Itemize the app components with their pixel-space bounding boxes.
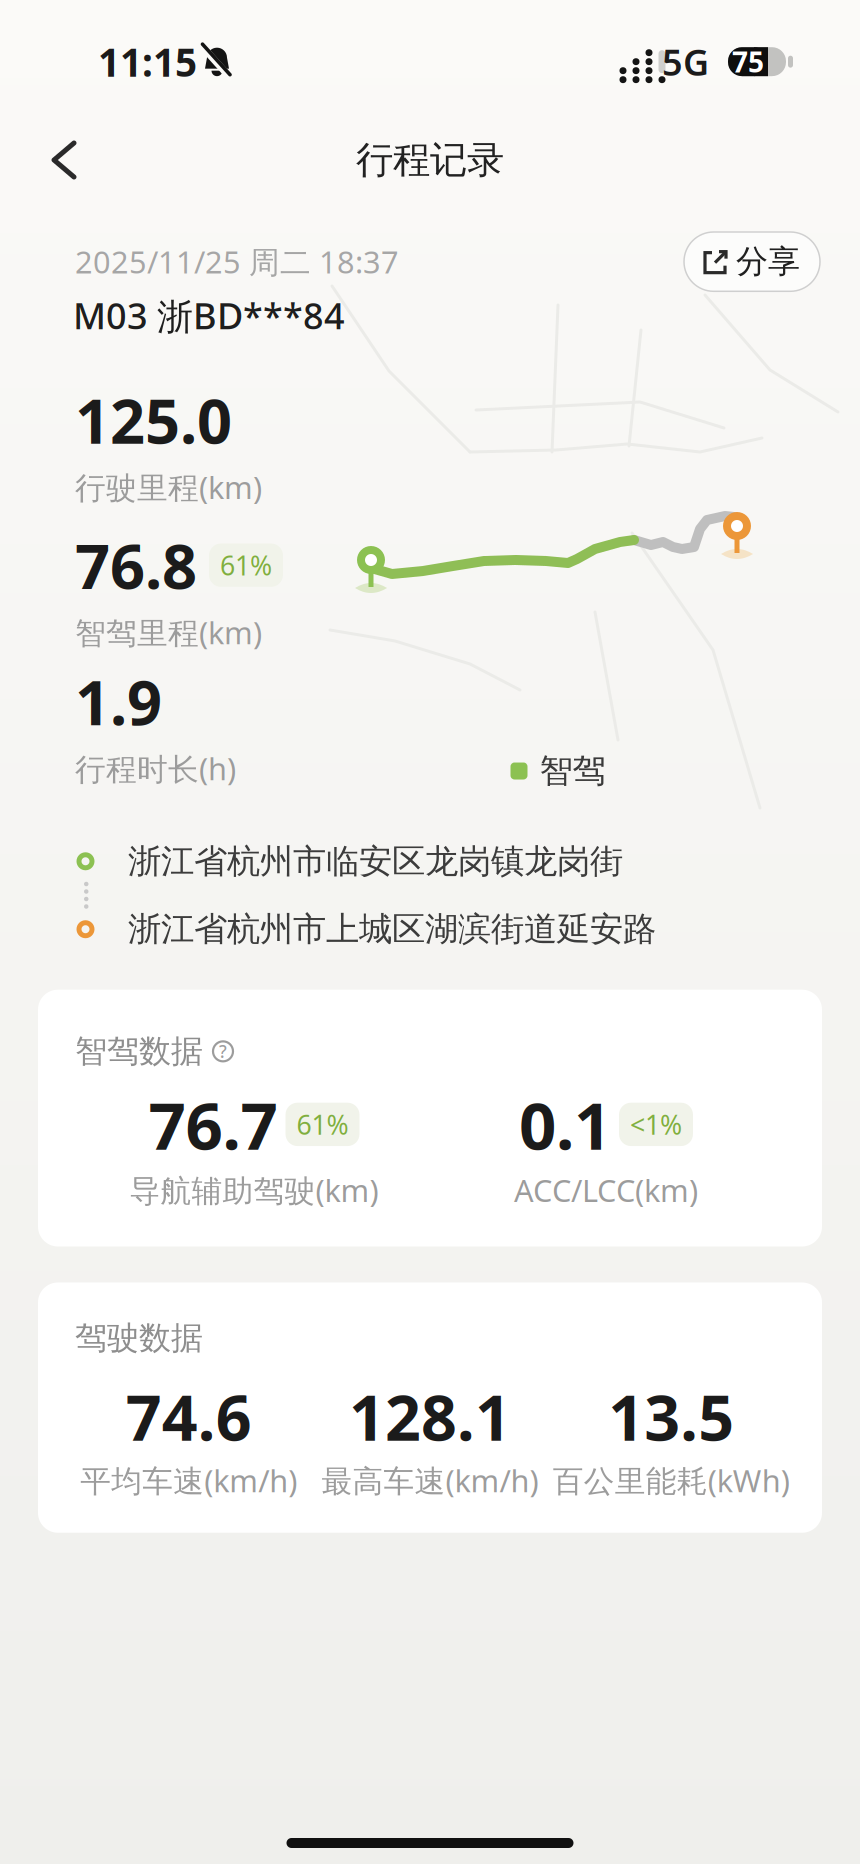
staticText: 智驾里程(km): [75, 612, 262, 653]
button[interactable]: Back: [0, 141, 102, 179]
staticText: 128.1: [349, 1375, 511, 1458]
staticText: 最高车速(km/h): [321, 1460, 538, 1501]
staticText: 智驾: [539, 750, 605, 791]
staticText: 0.1: [519, 1081, 611, 1168]
staticText: 11:15: [98, 36, 197, 87]
staticText: 分享: [736, 242, 800, 281]
staticText: 75: [732, 43, 764, 80]
staticText: 61%: [296, 1107, 348, 1142]
staticText: 浙江省杭州市临安区龙岗镇龙岗街: [128, 841, 623, 882]
staticText: 行程记录: [356, 137, 504, 183]
staticText: 61%: [220, 547, 272, 583]
staticText: 74.6: [126, 1375, 252, 1458]
staticText: 平均车速(km/h): [80, 1460, 297, 1501]
staticText: 1.9: [75, 661, 162, 742]
staticText: 5G: [662, 38, 709, 86]
staticText: M03 浙BD***84: [73, 291, 345, 339]
staticText: 百公里能耗(kWh): [553, 1460, 790, 1501]
staticText: 行程时长(h): [75, 748, 236, 789]
staticText: 导航辅助驾驶(km): [129, 1170, 378, 1210]
staticText: 76.7: [148, 1081, 277, 1168]
staticText: ?: [219, 1040, 227, 1063]
staticText: 76.8: [75, 524, 197, 606]
staticText: <1%: [630, 1107, 682, 1142]
staticText: 13.5: [608, 1375, 734, 1458]
staticText: ACC/LCC(km): [514, 1170, 698, 1210]
staticText: 智驾数据: [75, 1032, 203, 1071]
staticText: 驾驶数据: [75, 1318, 203, 1358]
staticText: 浙江省杭州市上城区湖滨街道延安路: [128, 909, 656, 950]
staticText: 行驶里程(km): [75, 467, 262, 507]
staticText: 125.0: [75, 379, 232, 461]
button[interactable]: 分享: [684, 232, 820, 291]
button[interactable]: 智驾数据说明: [213, 1040, 233, 1063]
staticText: 2025/11/25 周二 18:37: [75, 241, 399, 282]
